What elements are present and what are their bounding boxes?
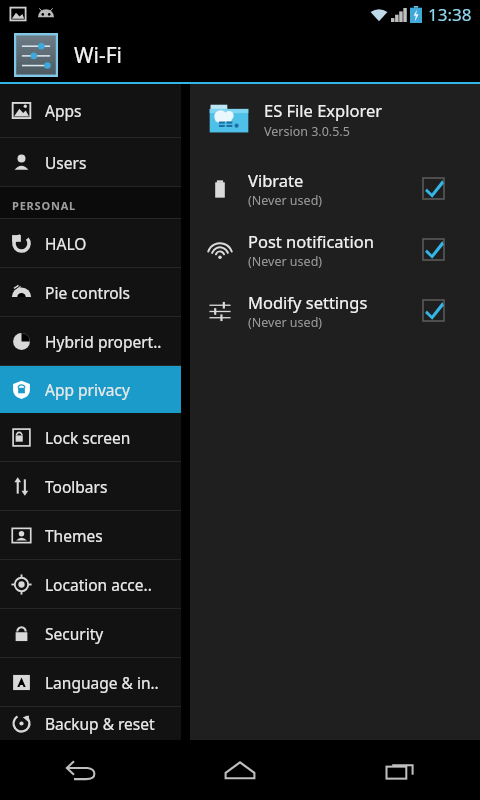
button[interactable]: Wi-Fi [0, 28, 480, 82]
button[interactable]: Pie controls [0, 268, 181, 316]
staticText: Security [45, 623, 104, 644]
button[interactable]: HALO [0, 219, 181, 267]
button[interactable]: App privacy [0, 366, 181, 413]
button[interactable]: Hybrid propert.. [0, 317, 181, 365]
staticText: Themes [45, 525, 103, 546]
staticText: HALO [45, 233, 87, 254]
button[interactable]: Location acce.. [0, 560, 181, 608]
staticText: Location acce.. [45, 574, 152, 595]
staticText: (Never used) [248, 253, 323, 270]
button[interactable]: Home [160, 740, 320, 800]
button[interactable]: Post notification [190, 219, 480, 280]
staticText: Lock screen [45, 427, 131, 448]
staticText: App privacy [45, 379, 130, 400]
button[interactable]: Back [0, 740, 160, 800]
staticText: Users [45, 152, 87, 173]
staticText: Backup & reset [45, 713, 155, 734]
staticText: PERSONAL [12, 198, 77, 213]
staticText: Apps [45, 100, 82, 121]
button[interactable]: Lock screen [0, 413, 181, 461]
button[interactable]: Apps [0, 84, 181, 137]
staticText: Pie controls [45, 282, 131, 303]
staticText: 13:38 [428, 3, 472, 26]
staticText: (Never used) [248, 314, 323, 331]
button[interactable]: Vibrate [190, 158, 480, 219]
button[interactable]: Toolbars [0, 462, 181, 510]
button[interactable]: Users [0, 138, 181, 186]
staticText: (Never used) [248, 192, 323, 209]
button[interactable]: Modify settings [190, 280, 480, 341]
button[interactable]: Backup & reset [0, 707, 181, 740]
button[interactable]: Recent apps [320, 740, 480, 800]
button[interactable]: Language & in.. [0, 658, 181, 706]
button[interactable]: Themes [0, 511, 181, 559]
staticText: Post notification [248, 230, 375, 252]
staticText: Vibrate [248, 169, 304, 191]
staticText: Hybrid propert.. [45, 331, 162, 352]
staticText: Wi-Fi [74, 41, 123, 70]
button[interactable]: Security [0, 609, 181, 657]
staticText: Language & in.. [45, 672, 159, 693]
staticText: Toolbars [45, 476, 108, 497]
staticText: Version 3.0.5.5 [264, 123, 350, 140]
staticText: Modify settings [248, 291, 368, 313]
button[interactable]: ES File Explorer [190, 94, 480, 146]
staticText: ES File Explorer [264, 99, 383, 121]
